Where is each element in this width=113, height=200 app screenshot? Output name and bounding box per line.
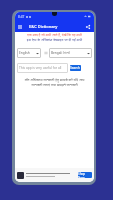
button[interactable]: Search: [70, 65, 81, 71]
button[interactable]: Shop Now: [78, 172, 92, 178]
staticText: इस ऐप्प के अधिकांश वेबसाइट पर दी गई सभी: [17, 37, 92, 42]
button[interactable]: Share: [84, 23, 92, 31]
button[interactable]: English: [17, 48, 41, 58]
button[interactable]: Bengali (বাংলা): [49, 48, 92, 58]
staticText: जानकारी लगाएं तथा समझने जानकारी: [17, 82, 92, 87]
staticText: Bengali (বাংলা): [51, 51, 71, 55]
staticText: Search: [70, 66, 81, 70]
button[interactable]: This app is very useful for all: [17, 63, 68, 73]
staticText: एक शब्द है जो सभी आते हैं, देखें कि यह स…: [17, 32, 92, 37]
staticText: English: [19, 51, 30, 55]
button[interactable]: Shop Now: [15, 168, 94, 182]
button[interactable]: Menu: [16, 23, 24, 31]
staticText: Shop Now: [78, 172, 92, 178]
staticText: और अधिकतम जानकारी हेतु सम्पर्क करें यदि …: [17, 77, 92, 82]
staticText: 8:47: [18, 15, 25, 19]
staticText: This app is very useful for all: [19, 66, 62, 70]
staticText: E&C Dictionary: [29, 24, 58, 29]
button[interactable]: Swap languages: [43, 50, 48, 55]
